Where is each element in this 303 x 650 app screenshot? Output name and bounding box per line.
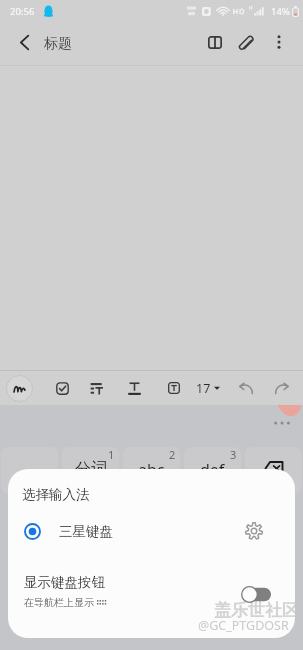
button[interactable]: Attach bbox=[233, 29, 259, 55]
button[interactable]: Keyboard settings bbox=[241, 518, 267, 544]
button[interactable]: Back bbox=[11, 29, 37, 55]
staticText: 盖乐世社区 bbox=[214, 600, 295, 621]
staticText: 标题 bbox=[44, 35, 72, 53]
staticText: 显示键盘按钮 bbox=[24, 574, 105, 591]
button[interactable]: Show keyboard button toggle bbox=[241, 586, 271, 603]
button[interactable]: Text style bbox=[120, 374, 148, 402]
button[interactable]: 分词 bbox=[62, 447, 119, 493]
button[interactable]: 显示键盘按钮 bbox=[8, 569, 295, 619]
button[interactable]: Checklist bbox=[48, 374, 76, 402]
staticText: 14% bbox=[271, 5, 290, 18]
button[interactable]: Backspace bbox=[245, 447, 302, 493]
staticText: 三星键盘 bbox=[59, 523, 113, 540]
button[interactable]: Paragraph style bbox=[82, 374, 110, 402]
button[interactable]: Symbols bbox=[1, 447, 58, 493]
staticText: 3 bbox=[230, 447, 237, 462]
staticText: 分词 bbox=[75, 459, 107, 479]
staticText: abc bbox=[138, 459, 165, 481]
button[interactable]: abc bbox=[123, 447, 180, 493]
button[interactable]: 三星键盘 bbox=[8, 513, 295, 549]
staticText: 在导航栏上显示 bbox=[24, 596, 94, 609]
button[interactable]: def bbox=[184, 447, 241, 493]
staticText: def bbox=[200, 459, 225, 481]
staticText: 17 bbox=[196, 380, 211, 397]
button[interactable]: Text box bbox=[160, 374, 188, 402]
staticText: 2 bbox=[169, 447, 176, 462]
button[interactable]: 17 bbox=[194, 374, 222, 402]
button[interactable]: Undo bbox=[232, 374, 260, 402]
staticText: 20:56 bbox=[10, 5, 35, 18]
staticText: @GC_PTGDOSR bbox=[198, 617, 289, 634]
button[interactable]: More options bbox=[266, 29, 292, 55]
staticText: 1 bbox=[108, 447, 115, 462]
staticText: 选择输入法 bbox=[22, 486, 90, 503]
button[interactable]: Reading view bbox=[202, 29, 228, 55]
button[interactable]: Redo bbox=[268, 374, 296, 402]
button[interactable]: Handwriting bbox=[4, 373, 34, 403]
